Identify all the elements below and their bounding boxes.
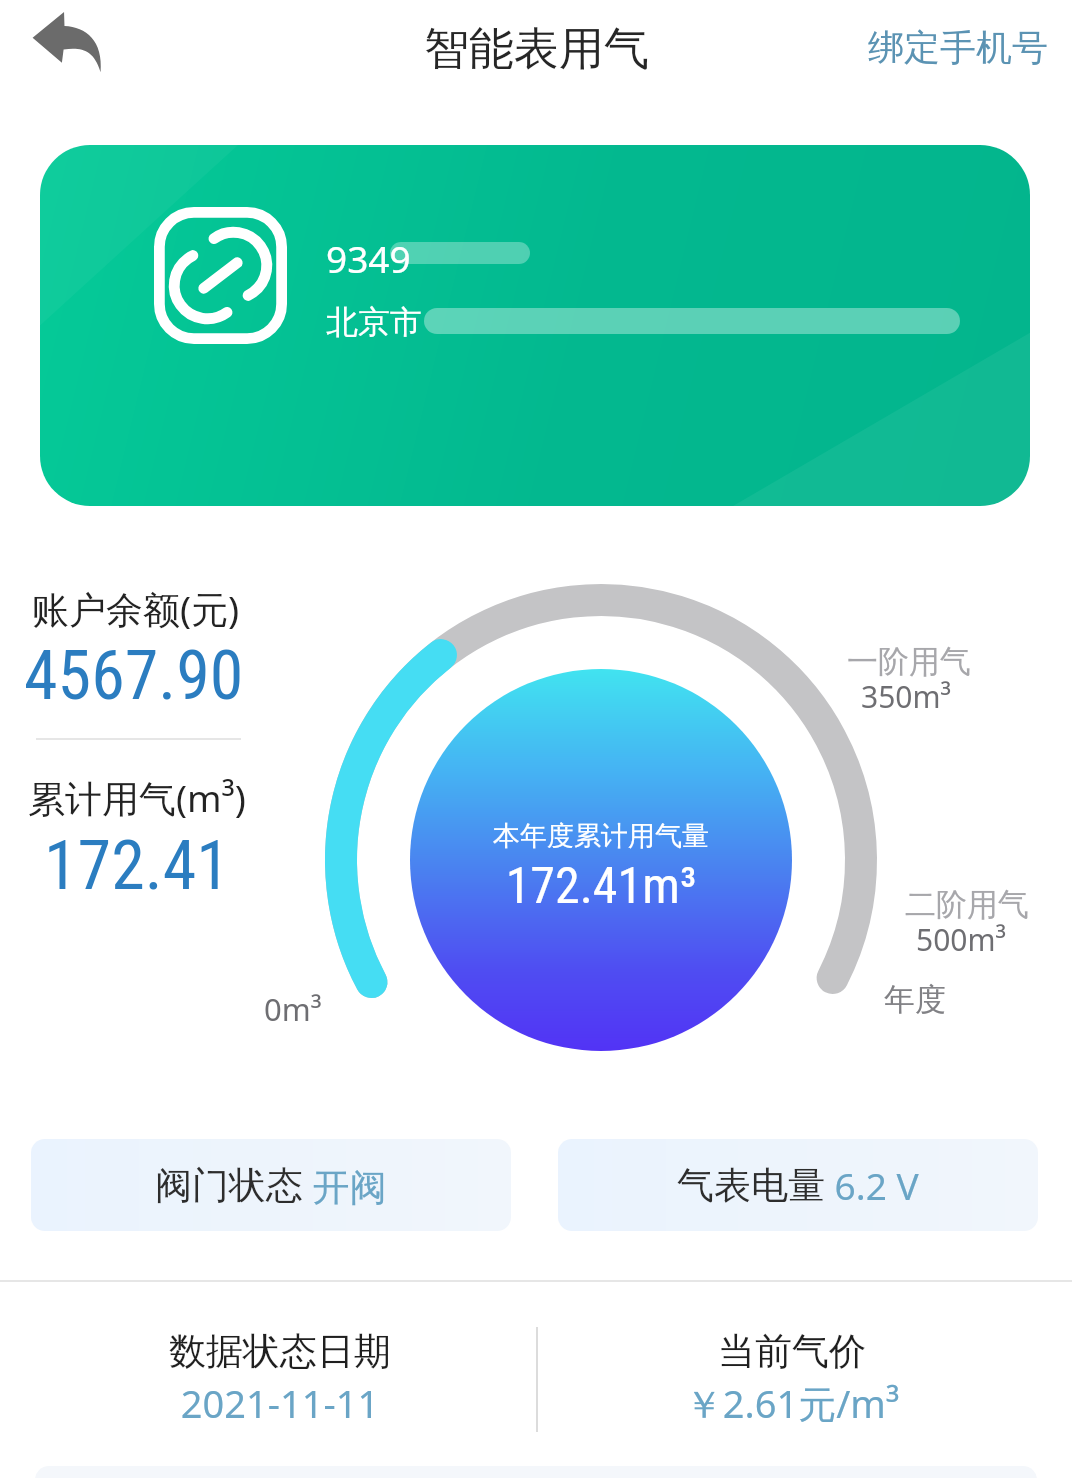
staticText: 本年度累计用气量 xyxy=(451,819,751,853)
staticText: 6.2 V xyxy=(825,1160,919,1210)
staticText: 0m³ xyxy=(264,988,322,1030)
button[interactable]: Back xyxy=(8,0,126,88)
staticText: 当前气价 xyxy=(524,1328,1060,1375)
staticText: 开阀 xyxy=(303,1160,387,1211)
button[interactable]: 绑定手机号 xyxy=(856,8,1060,86)
staticText: 北京市 xyxy=(326,302,422,342)
staticText: 气表电量 xyxy=(677,1162,825,1209)
button[interactable]: 数据状态日期 xyxy=(12,1290,548,1470)
staticText: 绑定手机号 xyxy=(868,25,1048,70)
staticText: 一阶用气 xyxy=(847,642,971,681)
staticText: 4567.90 xyxy=(24,636,244,716)
staticText: ￥2.61元/m³ xyxy=(524,1377,1060,1429)
staticText: 500m³ xyxy=(916,919,1007,960)
staticText: 阀门状态 xyxy=(155,1162,303,1209)
staticText: 智能表用气 xyxy=(424,21,649,78)
staticText: 数据状态日期 xyxy=(12,1328,548,1375)
staticText: 2021-11-11 xyxy=(12,1377,548,1429)
staticText: 账户余额(元) xyxy=(32,583,240,634)
staticText: 累计用气(m³) xyxy=(28,772,246,823)
staticText: 350m³ xyxy=(861,676,952,717)
button[interactable]: 当前气价 xyxy=(524,1290,1060,1470)
staticText: 二阶用气 xyxy=(905,885,1029,924)
button[interactable]: 阀门状态 xyxy=(31,1139,511,1231)
staticText: 172.41 xyxy=(44,826,230,906)
staticText: 9349 xyxy=(326,233,411,283)
button[interactable]: 气表电量 xyxy=(558,1139,1038,1231)
staticText: 年度 xyxy=(884,980,946,1019)
staticText: 172.41m³ xyxy=(451,857,751,916)
button[interactable]: 9349 xyxy=(40,145,1030,506)
